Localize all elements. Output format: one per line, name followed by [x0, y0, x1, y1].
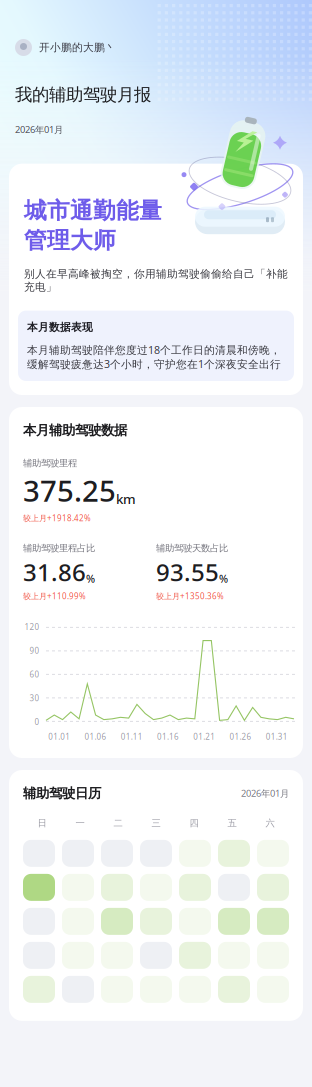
- staticText: 管理大师: [24, 226, 116, 254]
- staticText: 93.55: [156, 556, 219, 588]
- button[interactable]: 开小鹏的大鹏丶: [0, 37, 116, 58]
- staticText: 四: [189, 817, 198, 829]
- staticText: 0: [34, 717, 39, 727]
- staticText: 2026年01月: [15, 123, 63, 136]
- staticText: 120: [24, 622, 39, 632]
- staticText: 本月辅助驾驶数据: [23, 422, 127, 438]
- staticText: 较上月+1350.36%: [156, 591, 224, 601]
- staticText: 01.16: [157, 731, 179, 742]
- staticText: 我的辅助驾驶月报: [15, 84, 151, 105]
- staticText: 较上月+1918.42%: [23, 513, 91, 523]
- staticText: 辅助驾驶里程占比: [23, 542, 95, 554]
- staticText: 二: [113, 817, 122, 829]
- staticText: 别人在早高峰被掏空，你用辅助驾驶偷偷给自己「补能充电」: [24, 267, 288, 294]
- staticText: 城市通勤能量: [24, 197, 162, 224]
- staticText: %: [219, 572, 228, 586]
- staticText: 一: [75, 817, 84, 829]
- staticText: 31.86: [23, 556, 86, 588]
- staticText: 2026年01月: [241, 787, 289, 799]
- staticText: 较上月+110.99%: [23, 591, 86, 601]
- staticText: %: [86, 572, 95, 586]
- staticText: 30: [29, 693, 39, 703]
- staticText: 本月辅助驾驶陪伴您度过18个工作日的清晨和傍晚，缓解驾驶疲惫达3个小时，守护您在…: [27, 343, 281, 371]
- staticText: 01.26: [230, 731, 252, 742]
- staticText: 开小鹏的大鹏丶: [39, 41, 116, 54]
- staticText: 三: [151, 817, 160, 829]
- staticText: 01.21: [193, 731, 215, 742]
- staticText: 01.31: [266, 731, 288, 742]
- staticText: 辅助驾驶里程: [23, 457, 77, 469]
- staticText: 五: [227, 817, 236, 829]
- staticText: 90: [29, 645, 39, 656]
- staticText: 01.06: [84, 731, 106, 742]
- staticText: 375.25: [23, 471, 116, 510]
- staticText: 辅助驾驶日历: [23, 785, 101, 801]
- staticText: 六: [265, 817, 274, 829]
- staticText: km: [116, 490, 136, 508]
- staticText: 日: [37, 817, 46, 829]
- staticText: 60: [29, 669, 39, 680]
- staticText: 01.11: [121, 731, 143, 742]
- staticText: 辅助驾驶天数占比: [156, 542, 228, 554]
- staticText: 01.01: [48, 731, 70, 742]
- staticText: 本月数据表现: [27, 321, 93, 334]
